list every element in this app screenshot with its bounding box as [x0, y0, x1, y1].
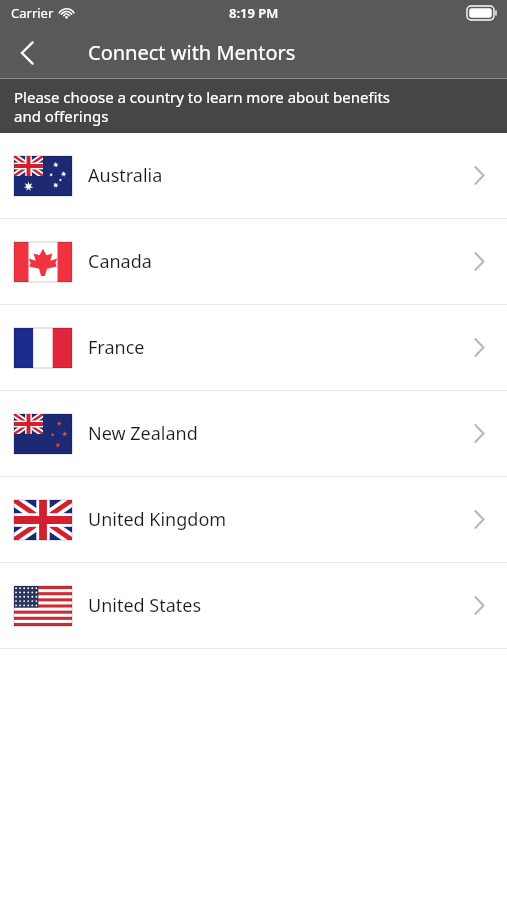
button[interactable]: France [0, 305, 507, 390]
staticText: New Zealand [88, 421, 198, 446]
staticText: Canada [88, 249, 152, 274]
staticText: Carrier [11, 4, 54, 22]
staticText: Please choose a country to learn more ab… [14, 87, 391, 126]
staticText: United States [88, 593, 202, 618]
staticText: Australia [88, 163, 163, 188]
button[interactable]: New Zealand [0, 391, 507, 476]
staticText: United Kingdom [88, 507, 227, 532]
button[interactable]: United Kingdom [0, 477, 507, 562]
button[interactable]: United States [0, 563, 507, 648]
staticText: Connect with Mentors [88, 39, 296, 66]
staticText: France [88, 335, 145, 360]
button[interactable]: Australia [0, 133, 507, 218]
button[interactable]: Back [0, 26, 54, 79]
staticText: 8:19 PM [229, 4, 279, 22]
button[interactable]: Canada [0, 219, 507, 304]
